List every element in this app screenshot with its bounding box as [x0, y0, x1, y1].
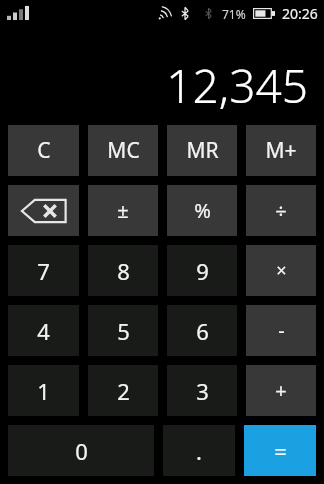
button[interactable]: ×	[246, 245, 316, 296]
button[interactable]: MC	[88, 125, 158, 176]
staticText: 7	[37, 256, 50, 286]
staticText: 5	[117, 316, 130, 346]
staticText: MC	[107, 136, 140, 165]
button[interactable]: -	[246, 305, 316, 356]
button[interactable]: MR	[167, 125, 237, 176]
staticText: 3	[196, 376, 209, 406]
button[interactable]: ±	[88, 185, 158, 236]
staticText: 71%	[222, 6, 246, 22]
button[interactable]: 2	[88, 365, 158, 416]
staticText: ×	[276, 258, 287, 283]
staticText: 1	[37, 376, 50, 406]
staticText: =	[274, 436, 287, 466]
staticText: +	[275, 377, 287, 404]
staticText: M+	[265, 136, 297, 165]
button[interactable]: 7	[8, 245, 79, 296]
staticText: MR	[186, 136, 219, 165]
button[interactable]: 6	[167, 305, 237, 356]
button[interactable]: 8	[88, 245, 158, 296]
button[interactable]: 3	[167, 365, 237, 416]
button[interactable]: ÷	[246, 185, 316, 236]
staticText: %	[194, 197, 211, 224]
staticText: 2	[117, 376, 130, 406]
staticText: 8	[117, 256, 130, 286]
staticText: 4	[37, 316, 50, 346]
button[interactable]: .	[163, 425, 235, 476]
staticText: .	[196, 436, 202, 466]
button[interactable]: +	[246, 365, 316, 416]
button[interactable]: =	[244, 425, 316, 476]
staticText: 20:26	[282, 4, 318, 23]
staticText: ±	[117, 197, 129, 224]
staticText: 0	[75, 436, 88, 466]
button[interactable]: C	[8, 125, 79, 176]
staticText: C	[37, 136, 51, 165]
staticText: 12,345	[166, 54, 308, 117]
button[interactable]: Backspace	[8, 185, 79, 236]
staticText: -	[278, 317, 285, 344]
button[interactable]: %	[167, 185, 237, 236]
button[interactable]: M+	[246, 125, 316, 176]
button[interactable]: 5	[88, 305, 158, 356]
button[interactable]: 4	[8, 305, 79, 356]
button[interactable]: 1	[8, 365, 79, 416]
staticText: 6	[196, 316, 209, 346]
button[interactable]: 9	[167, 245, 237, 296]
staticText: ÷	[275, 197, 287, 224]
staticText: 9	[196, 256, 209, 286]
button[interactable]: 0	[8, 425, 154, 476]
